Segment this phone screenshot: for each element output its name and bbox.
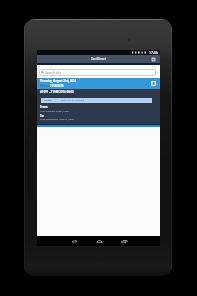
staticText: Search site... — [45, 71, 64, 75]
button[interactable]: Home — [93, 236, 105, 246]
staticText: 17:46 — [149, 50, 158, 55]
staticText: Thursday, August 21st, 2014 — [40, 79, 76, 83]
button[interactable]: Recent apps — [118, 236, 130, 246]
button[interactable]: Status: — [41, 98, 152, 103]
staticText: TaxiDirect — [91, 57, 107, 61]
button[interactable]: Thursday, August 21st, 2014 — [37, 78, 160, 89]
button[interactable]: Back — [68, 236, 80, 246]
staticText: 21/08/2014 — [50, 84, 64, 87]
button[interactable]: Menu — [151, 57, 156, 62]
button[interactable]: TaxiDirect — [37, 55, 160, 63]
button[interactable]: Search site... — [39, 69, 156, 76]
button[interactable]: Options — [151, 81, 156, 86]
staticText: To: — [40, 114, 44, 118]
staticText: 1234 Example Street, Town — [40, 110, 69, 113]
staticText: #1091 - 21/08/2014 08:00 — [40, 90, 74, 94]
staticText: From: — [40, 105, 48, 109]
staticText: Ride not yet assigned — [61, 99, 85, 102]
staticText: 5678 Destination Avenue, Town — [40, 118, 74, 121]
staticText: Status: — [44, 99, 52, 102]
staticText: Rides > — [40, 84, 50, 87]
